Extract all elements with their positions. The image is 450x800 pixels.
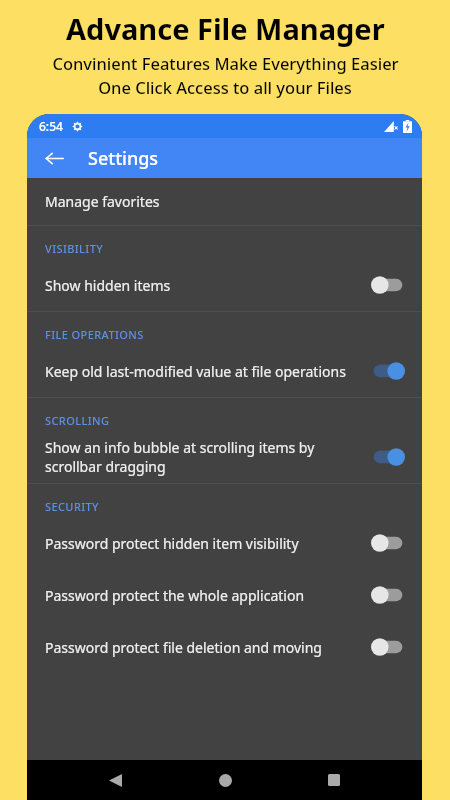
button[interactable]: Back — [93, 760, 137, 800]
staticText: FILE OPERATIONS — [45, 327, 144, 342]
button[interactable]: Password protect hidden item visibility — [27, 517, 422, 569]
staticText: Advance File Manager — [66, 9, 385, 48]
staticText: Password protect the whole application — [45, 586, 305, 605]
button[interactable]: Show hidden items — [27, 259, 422, 311]
button[interactable]: Back — [36, 140, 72, 176]
staticText: SECURITY — [45, 499, 99, 514]
button[interactable]: Recent apps — [312, 760, 356, 800]
button[interactable]: Password protect file deletion and movin… — [27, 621, 422, 673]
staticText: Manage favorites — [45, 192, 160, 211]
button[interactable]: Manage favorites — [27, 178, 422, 225]
staticText: Keep old last-modified value at file ope… — [45, 362, 346, 381]
button[interactable]: Home — [203, 760, 247, 800]
staticText: 6:54 — [39, 118, 63, 134]
staticText: VISIBILITY — [45, 241, 104, 256]
staticText: Password protect hidden item visibility — [45, 534, 299, 553]
staticText: Password protect file deletion and movin… — [45, 638, 322, 657]
staticText: Settings — [88, 146, 159, 171]
staticText: SCROLLING — [45, 413, 110, 428]
button[interactable]: Show an info bubble at scrolling items b… — [27, 431, 422, 483]
staticText: Show an info bubble at scrolling items b… — [45, 438, 358, 476]
staticText: One Click Access to all your Files — [98, 76, 352, 98]
button[interactable]: Password protect the whole application — [27, 569, 422, 621]
staticText: Show hidden items — [45, 276, 171, 295]
staticText: Convinient Features Make Everything Easi… — [52, 52, 399, 74]
button[interactable]: Keep old last-modified value at file ope… — [27, 345, 422, 397]
